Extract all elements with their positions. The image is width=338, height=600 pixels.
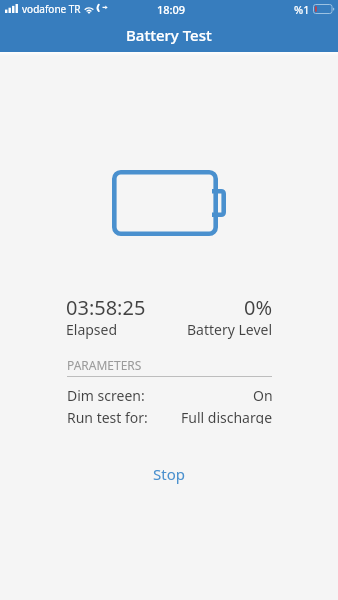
staticText: 18:09 (157, 2, 186, 17)
other: Wi-Fi connected (83, 5, 95, 14)
staticText: Elapsed (66, 320, 118, 339)
button[interactable]: Stop (139, 459, 199, 489)
other: Cellular signal strength (5, 4, 18, 13)
other: Call forwarding (98, 3, 108, 13)
staticText: On (253, 386, 273, 402)
other: Battery 1 percent (313, 4, 335, 14)
staticText: Run test for: (67, 408, 148, 424)
staticText: vodafone TR (22, 2, 81, 16)
staticText: Dim screen: (67, 386, 145, 402)
staticText: Battery Test (126, 25, 212, 45)
staticText: 0% (244, 294, 273, 321)
staticText: Battery Level (187, 320, 273, 339)
staticText: Full discharge (181, 408, 273, 424)
staticText: Stop (153, 464, 185, 484)
button[interactable]: Dim screen: (67, 386, 273, 402)
staticText: 03:58:25 (66, 294, 146, 321)
button[interactable]: Run test for: (67, 408, 273, 424)
staticText: PARAMETERS (67, 357, 142, 373)
other: Battery charge illustration (112, 170, 226, 236)
staticText: %1 (294, 2, 310, 17)
